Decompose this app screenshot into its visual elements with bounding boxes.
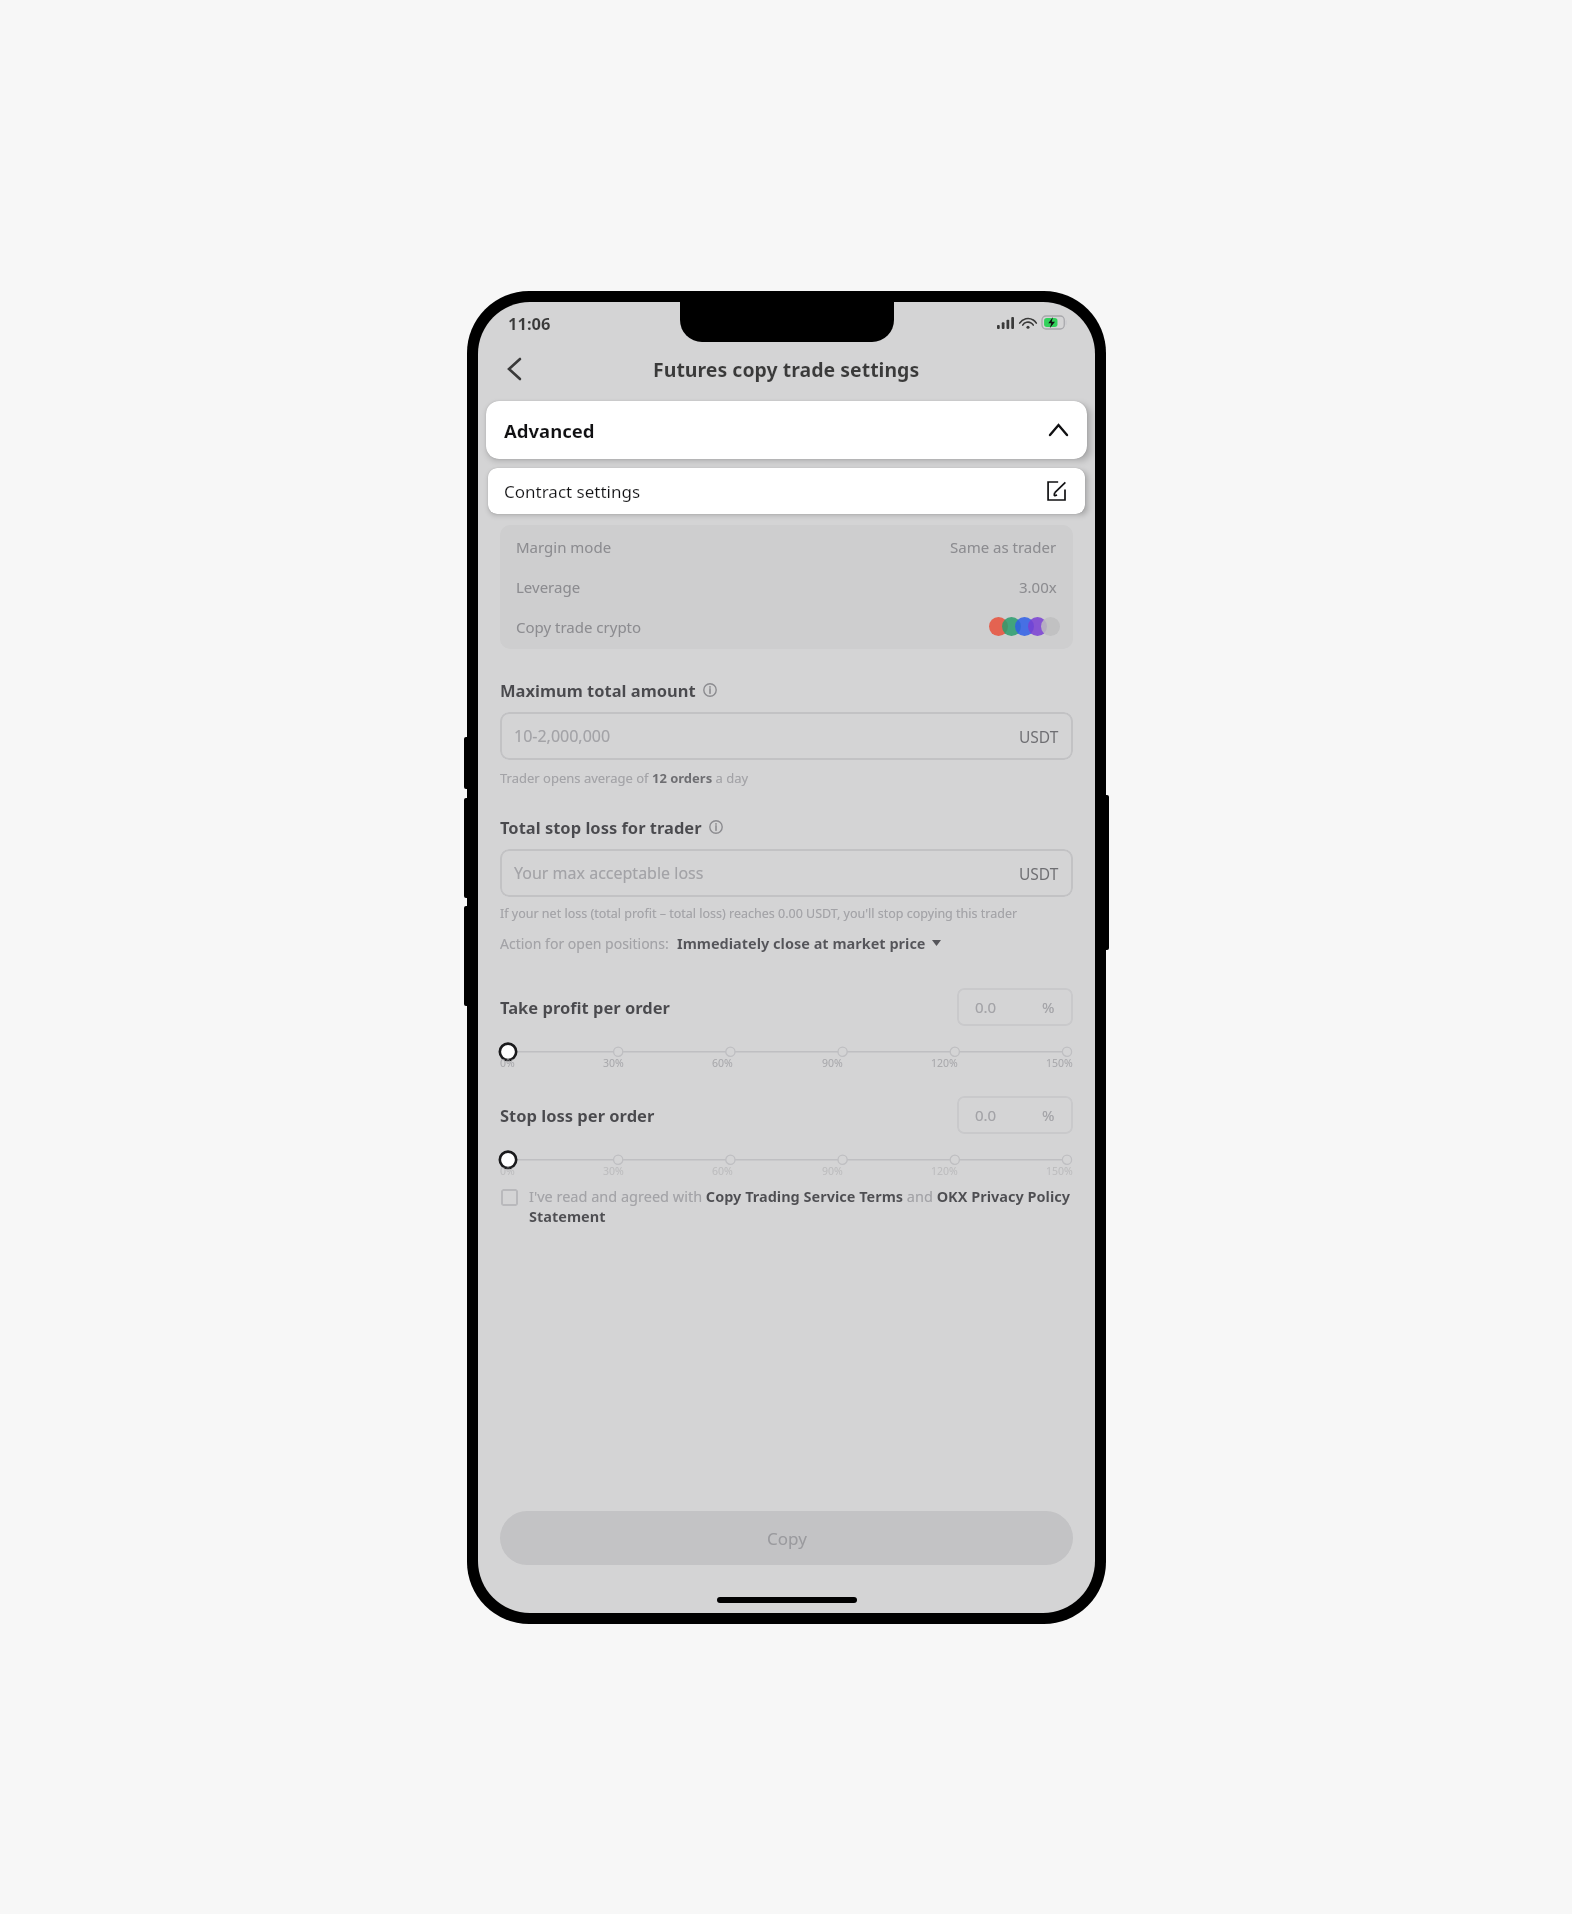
staticText: Leverage (516, 577, 581, 597)
staticText: Futures copy trade settings (653, 356, 920, 383)
button[interactable]: I've read and agreed with Copy Trading S… (500, 1186, 1073, 1227)
staticText: 60% (712, 1056, 733, 1070)
staticText: 3.00x (1019, 577, 1057, 597)
button[interactable]: Contract settings (488, 468, 1085, 514)
button[interactable]: Your max acceptable loss (500, 849, 1073, 897)
button[interactable]: 10-2,000,000 (500, 712, 1073, 760)
staticText: % (1042, 997, 1055, 1017)
staticText: 0.0 (975, 1105, 997, 1125)
staticText: 0% (500, 1056, 515, 1070)
button[interactable]: Copy (500, 1511, 1073, 1565)
button[interactable]: 0% (500, 1044, 1073, 1070)
staticText: 11:06 (508, 312, 551, 334)
staticText: Maximum total amount (500, 679, 696, 701)
staticText: 150% (1046, 1056, 1073, 1070)
staticText: USDT (1019, 726, 1059, 747)
staticText: USDT (1019, 863, 1059, 884)
staticText: 90% (822, 1056, 843, 1070)
staticText: Margin mode (516, 537, 612, 557)
staticText: 90% (822, 1164, 843, 1178)
button[interactable]: Edit contract settings (1045, 480, 1067, 502)
staticText: 0% (500, 1164, 515, 1178)
button[interactable]: Action for open positions: (500, 933, 941, 953)
staticText: 120% (931, 1164, 958, 1178)
staticText: Immediately close at market price (677, 933, 926, 953)
staticText: Copy (767, 1527, 807, 1550)
staticText: Total stop loss for trader (500, 816, 702, 838)
staticText: Same as trader (950, 537, 1057, 557)
staticText: 120% (931, 1056, 958, 1070)
staticText: 30% (603, 1164, 624, 1178)
staticText: 10-2,000,000 (514, 725, 611, 747)
staticText: I've read and agreed with Copy Trading S… (529, 1186, 1073, 1227)
button[interactable]: Advanced (486, 401, 1087, 459)
staticText: Trader opens average of 12 orders a day (500, 769, 749, 787)
staticText: 150% (1046, 1164, 1073, 1178)
button[interactable]: Back (492, 347, 536, 391)
staticText: Your max acceptable loss (514, 862, 704, 884)
staticText: Stop loss per order (500, 1104, 655, 1126)
staticText: Advanced (504, 418, 595, 443)
staticText: % (1042, 1105, 1055, 1125)
button[interactable]: 0% (500, 1152, 1073, 1178)
staticText: If your net loss (total profit – total l… (500, 905, 1018, 922)
staticText: 60% (712, 1164, 733, 1178)
staticText: 30% (603, 1056, 624, 1070)
staticText: Take profit per order (500, 996, 670, 1018)
button[interactable]: 0.0 (957, 988, 1073, 1026)
staticText: Contract settings (504, 480, 641, 503)
staticText: Copy trade crypto (516, 617, 642, 637)
staticText: 0.0 (975, 997, 997, 1017)
button[interactable]: 0.0 (957, 1096, 1073, 1134)
staticText: Action for open positions: (500, 934, 669, 953)
